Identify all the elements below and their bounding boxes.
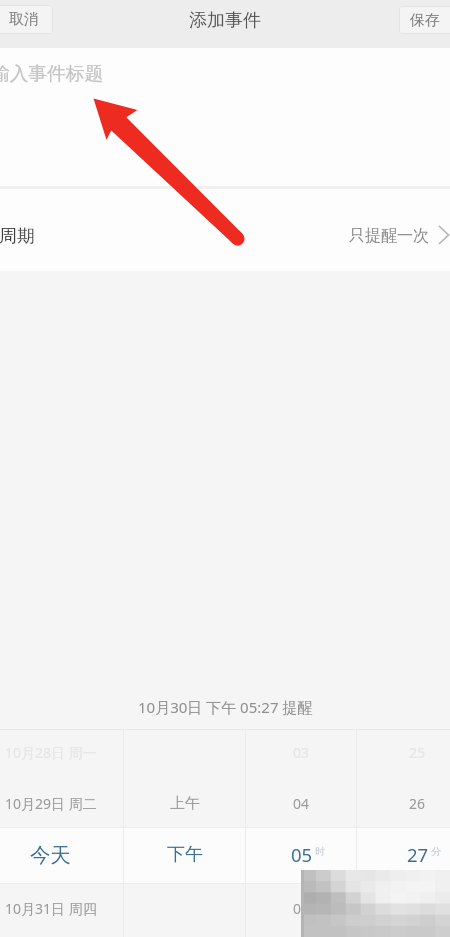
staticText: 10月28日 周一 <box>5 743 97 762</box>
staticText: 10月30日 下午 05:27 提醒 <box>138 697 313 717</box>
staticText: 27 <box>407 842 429 867</box>
staticText: 时 <box>315 845 325 858</box>
button[interactable]: 03 <box>246 730 357 937</box>
staticText: 输入事件标题 <box>0 62 104 86</box>
staticText: 03 <box>293 743 310 762</box>
button[interactable]: 保存 <box>399 6 450 34</box>
staticText: 04 <box>293 794 310 813</box>
staticText: 06 <box>293 899 310 918</box>
staticText: 添加事件 <box>189 9 261 32</box>
staticText: 分 <box>431 845 441 858</box>
staticText: 周期 <box>0 225 35 248</box>
staticText: 10月29日 周二 <box>5 794 97 813</box>
staticText: 10月31日 周四 <box>5 899 97 918</box>
button[interactable]: 25 <box>357 730 450 937</box>
button[interactable]: 上午 <box>124 730 246 937</box>
button[interactable]: 10月28日 周一 <box>0 730 124 937</box>
staticText: 上午 <box>170 794 200 813</box>
staticText: 取消 <box>9 10 39 29</box>
staticText: 下午 <box>167 843 203 866</box>
button[interactable]: 输入事件标题 <box>0 48 450 186</box>
staticText: 只提醒一次 <box>349 226 429 246</box>
staticText: 28 <box>409 899 426 918</box>
staticText: 今天 <box>30 842 71 868</box>
other: Open repeat options <box>438 225 450 245</box>
staticText: 保存 <box>410 11 440 30</box>
button[interactable]: 取消 <box>0 5 53 34</box>
staticText: 25 <box>409 743 426 762</box>
staticText: 26 <box>409 794 426 813</box>
button[interactable]: 周期 <box>0 189 450 271</box>
staticText: 05 <box>291 842 313 867</box>
